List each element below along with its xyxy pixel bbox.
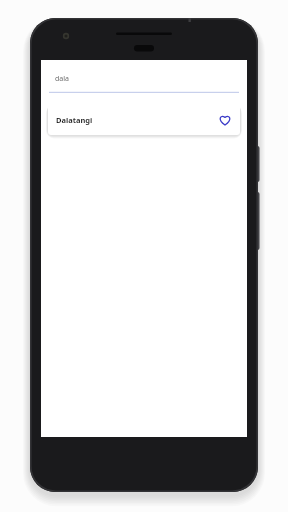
staticText: dala bbox=[55, 74, 69, 84]
button[interactable]: Add to favourites bbox=[217, 112, 232, 127]
button[interactable]: dala bbox=[41, 60, 247, 94]
button[interactable]: Dalatangi bbox=[48, 104, 240, 135]
staticText: Dalatangi bbox=[56, 115, 93, 125]
